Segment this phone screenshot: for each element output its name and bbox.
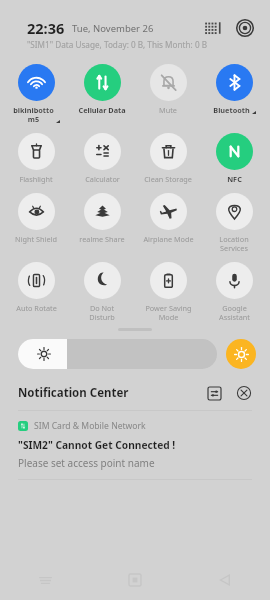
staticText: Please set access point name — [18, 456, 155, 470]
button[interactable]: Mute — [138, 62, 198, 115]
button[interactable]: Google Assistant — [204, 260, 264, 322]
staticText: Calculator — [85, 174, 120, 184]
staticText: Airplane Mode — [143, 234, 194, 244]
staticText: Notification Center — [18, 385, 129, 401]
button[interactable]: Power Saving Mode — [138, 260, 198, 322]
button[interactable]: NFC — [204, 131, 264, 184]
staticText: "SIM2" Cannot Get Connected ! — [18, 438, 176, 452]
staticText: Clean Storage — [144, 174, 192, 184]
button[interactable]: Edit tiles — [201, 17, 223, 39]
staticText: Power Saving Mode — [145, 303, 192, 322]
staticText: Night Shield — [15, 234, 57, 244]
staticText: bikinibotto m5 — [13, 105, 54, 124]
staticText: Mute — [159, 105, 177, 115]
staticText: Location Services — [219, 234, 249, 253]
button[interactable]: Clean Storage — [138, 131, 198, 184]
button[interactable]: Bluetooth — [204, 62, 264, 115]
staticText: Auto Rotate — [16, 303, 57, 313]
staticText: realme Share — [79, 234, 125, 244]
staticText: Do Not Disturb — [89, 303, 115, 322]
staticText: Tue, November 26 — [72, 22, 154, 35]
staticText: "SIM1" Data Usage, Today: 0 B, This Mont… — [27, 39, 208, 50]
button[interactable]: Location Services — [204, 191, 264, 253]
button[interactable]: Calculator — [72, 131, 132, 184]
button[interactable]: Auto brightness — [226, 339, 256, 369]
staticText: Cellular Data — [78, 105, 126, 115]
button[interactable]: Notification settings — [204, 383, 224, 403]
button[interactable]: realme Share — [72, 191, 132, 244]
button[interactable]: Settings — [234, 17, 256, 39]
staticText: Flashlight — [19, 174, 53, 184]
staticText: NFC — [227, 174, 242, 184]
button[interactable]: Cellular Data — [72, 62, 132, 115]
button[interactable]: Airplane Mode — [138, 191, 198, 244]
button[interactable]: bikinibotto m5 — [6, 62, 66, 124]
button[interactable]: Flashlight — [6, 131, 66, 184]
button[interactable]: Brightness — [18, 339, 217, 369]
staticText: Google Assistant — [219, 303, 250, 322]
staticText: Bluetooth — [213, 105, 250, 115]
staticText: SIM Card & Mobile Network — [34, 420, 146, 432]
button[interactable]: SIM Card & Mobile Network — [0, 411, 270, 480]
button[interactable]: Do Not Disturb — [72, 260, 132, 322]
button[interactable]: Night Shield — [6, 191, 66, 244]
button[interactable]: Auto Rotate — [6, 260, 66, 313]
button[interactable]: Clear all notifications — [234, 383, 254, 403]
staticText: 22:36 — [27, 18, 65, 38]
